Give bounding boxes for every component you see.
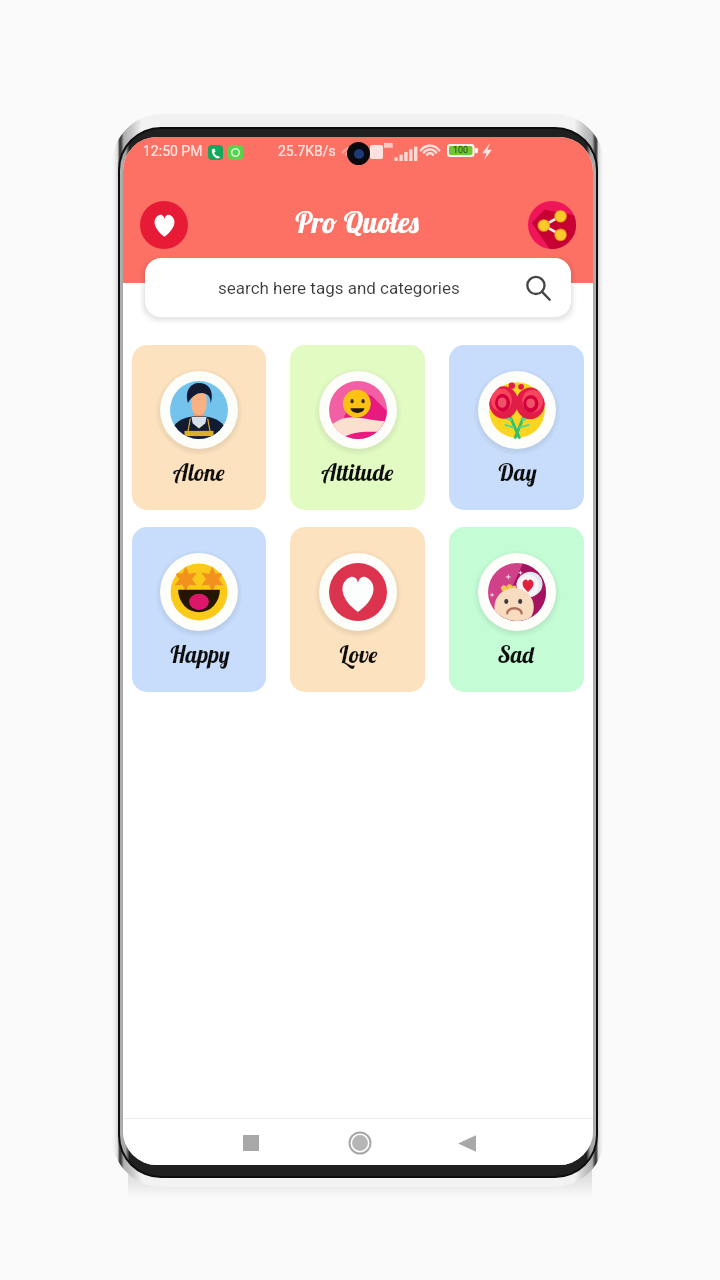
staticText: 25.7KB/s: [278, 143, 336, 159]
button[interactable]: Happy: [132, 527, 266, 692]
button[interactable]: Favourites: [140, 201, 188, 249]
button[interactable]: Sad: [449, 527, 584, 692]
button[interactable]: Love: [290, 527, 425, 692]
button[interactable]: Back: [431, 1119, 503, 1165]
staticText: Happy: [169, 640, 230, 669]
staticText: Pro Quotes: [294, 204, 421, 240]
staticText: Attitude: [322, 458, 394, 487]
button[interactable]: Alone: [132, 345, 266, 510]
button[interactable]: search here tags and categories: [145, 258, 571, 317]
staticText: 12:50 PM: [143, 143, 203, 159]
button[interactable]: Share: [528, 201, 576, 249]
button[interactable]: Day: [449, 345, 584, 510]
staticText: Sad: [498, 640, 535, 669]
button[interactable]: Home: [324, 1119, 396, 1165]
staticText: search here tags and categories: [218, 278, 460, 298]
staticText: Alone: [174, 458, 225, 487]
button[interactable]: Attitude: [290, 345, 425, 510]
staticText: Love: [338, 640, 378, 669]
staticText: Day: [497, 458, 537, 487]
staticText: 100: [453, 145, 469, 156]
button[interactable]: Recents: [215, 1119, 287, 1165]
